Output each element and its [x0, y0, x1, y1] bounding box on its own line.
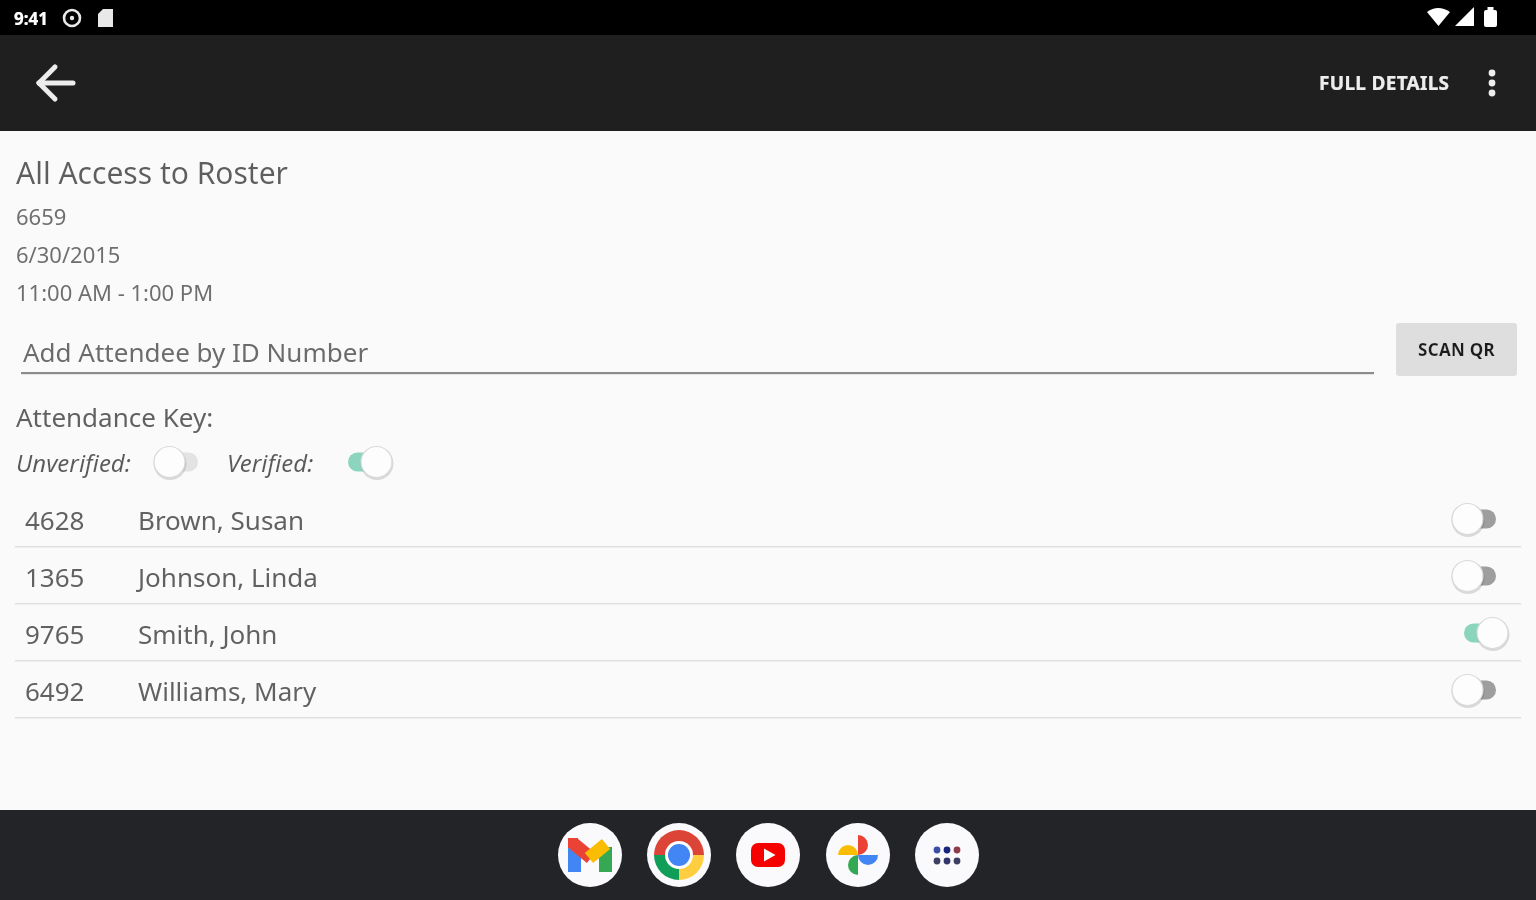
- staticText: SCAN QR: [1418, 338, 1495, 361]
- button[interactable]: [344, 444, 398, 480]
- button[interactable]: [150, 444, 204, 480]
- button[interactable]: [24, 51, 88, 115]
- staticText: 6/30/2015: [16, 239, 121, 269]
- button[interactable]: [647, 823, 711, 887]
- staticText: Add Attendee by ID Number: [23, 334, 369, 369]
- button[interactable]: SCAN QR: [1396, 323, 1517, 376]
- staticText: 11:00 AM - 1:00 PM: [16, 277, 214, 307]
- button[interactable]: [736, 823, 800, 887]
- staticText: FULL DETAILS: [1319, 70, 1450, 96]
- staticText: 1365: [25, 559, 85, 594]
- staticText: 9:41: [14, 7, 48, 30]
- staticText: Johnson, Linda: [138, 559, 318, 594]
- button[interactable]: [0, 661, 1536, 718]
- staticText: Attendance Key:: [16, 399, 214, 434]
- button[interactable]: [0, 490, 1536, 547]
- button[interactable]: [0, 604, 1536, 661]
- button[interactable]: [1448, 558, 1502, 594]
- button[interactable]: [1448, 501, 1502, 537]
- staticText: 9765: [25, 616, 85, 651]
- staticText: 6492: [25, 673, 85, 708]
- staticText: Brown, Susan: [138, 502, 305, 537]
- staticText: Verified:: [227, 446, 314, 479]
- staticText: Unverified:: [16, 446, 131, 479]
- button[interactable]: [915, 823, 979, 887]
- button[interactable]: [1448, 672, 1502, 708]
- button[interactable]: [1468, 51, 1516, 115]
- staticText: Williams, Mary: [138, 673, 317, 708]
- staticText: Smith, John: [138, 616, 278, 651]
- button[interactable]: [826, 823, 890, 887]
- button[interactable]: [1460, 615, 1514, 651]
- button[interactable]: [0, 547, 1536, 604]
- button[interactable]: [21, 325, 1374, 375]
- button[interactable]: FULL DETAILS: [1300, 49, 1468, 117]
- staticText: 4628: [25, 502, 85, 537]
- staticText: 6659: [16, 201, 67, 231]
- button[interactable]: [558, 823, 622, 887]
- staticText: All Access to Roster: [16, 152, 288, 193]
